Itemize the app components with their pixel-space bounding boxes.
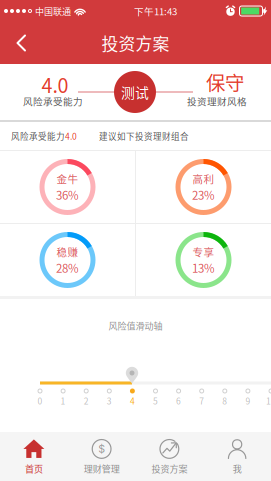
staticText: 13% <box>192 259 215 276</box>
staticText: 9 <box>245 394 250 407</box>
staticText: 投资方案 <box>151 462 187 475</box>
staticText: 0 <box>37 394 42 407</box>
staticText: 1 <box>61 394 66 407</box>
staticText: 投资方案 <box>101 31 169 55</box>
staticText: $ <box>98 442 105 455</box>
staticText: 理财管理 <box>84 462 120 475</box>
staticText: 稳赚 <box>56 244 78 259</box>
staticText: 保守 <box>206 68 244 96</box>
staticText: 投资理财风格 <box>187 94 247 108</box>
staticText: 36% <box>56 186 79 203</box>
button[interactable]: 返回 <box>0 23 41 63</box>
staticText: 7 <box>199 394 204 407</box>
staticText: 风险承受能力 <box>11 130 65 142</box>
staticText: 首页 <box>25 462 43 475</box>
staticText: 28% <box>56 259 79 276</box>
button[interactable]: 测试 <box>114 71 156 113</box>
staticText: 中国联通 <box>35 4 71 17</box>
staticText: 23% <box>192 186 215 203</box>
staticText: 我 <box>233 462 242 475</box>
staticText: 10 <box>266 394 271 407</box>
staticText: 建议如下投资理财组合 <box>99 130 189 142</box>
button[interactable]: 我 <box>203 432 271 481</box>
button[interactable]: 首页 <box>0 432 68 481</box>
staticText: 高利 <box>192 171 214 186</box>
staticText: 金牛 <box>56 171 78 186</box>
staticText: 测试 <box>121 82 149 102</box>
staticText: 专享 <box>192 244 214 259</box>
staticText: 8 <box>222 394 227 407</box>
staticText: 风险值滑动轴 <box>108 319 162 332</box>
staticText: 风险承受能力 <box>23 94 83 108</box>
button[interactable]: $ <box>68 432 136 481</box>
button[interactable]: 投资方案 <box>135 432 203 481</box>
staticText: 6 <box>176 394 181 407</box>
staticText: 4.0 <box>65 130 77 142</box>
staticText: 3 <box>107 394 112 407</box>
staticText: 下午11:43 <box>134 4 177 18</box>
staticText: 2 <box>84 394 89 407</box>
staticText: 5 <box>153 394 158 407</box>
staticText: 4 <box>130 394 135 407</box>
staticText: 4.0 <box>41 70 68 99</box>
